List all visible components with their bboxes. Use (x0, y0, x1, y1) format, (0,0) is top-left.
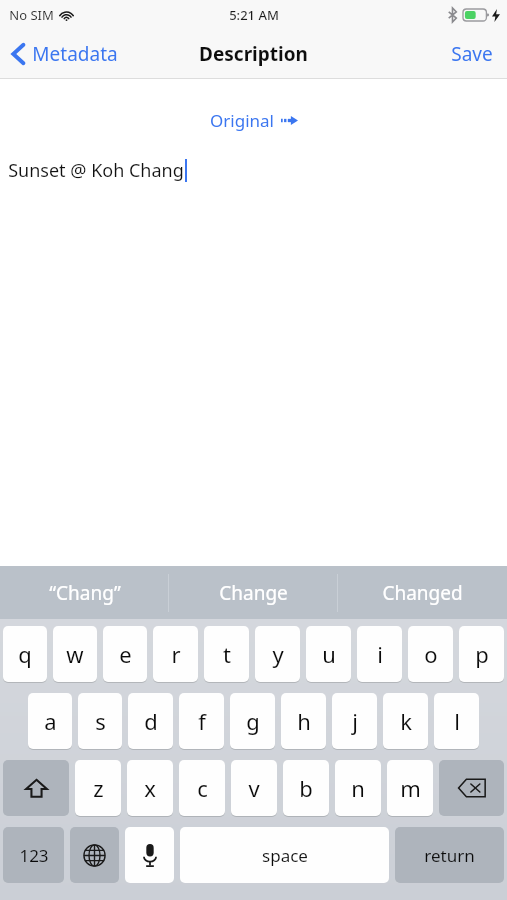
button[interactable]: c (179, 760, 225, 816)
staticText: g (246, 706, 260, 736)
staticText: l (454, 706, 460, 736)
button[interactable]: w (53, 626, 97, 682)
button[interactable]: g (230, 693, 275, 749)
button[interactable]: Backspace (439, 760, 504, 816)
staticText: a (44, 706, 57, 736)
staticText: n (351, 773, 365, 803)
button[interactable]: t (204, 626, 249, 682)
button[interactable]: Shift (3, 760, 69, 816)
button[interactable]: Original (202, 105, 306, 136)
button[interactable]: l (434, 693, 479, 749)
button[interactable]: v (231, 760, 277, 816)
staticText: o (424, 639, 438, 669)
staticText: t (223, 639, 231, 669)
button[interactable]: y (255, 626, 300, 682)
button[interactable]: z (75, 760, 121, 816)
staticText: k (400, 706, 412, 736)
staticText: p (475, 639, 489, 669)
staticText: b (299, 773, 313, 803)
button[interactable]: k (383, 693, 428, 749)
button[interactable]: m (387, 760, 433, 816)
staticText: Original (210, 109, 274, 132)
staticText: y (272, 639, 284, 669)
staticText: 5:21 AM (229, 6, 279, 24)
staticText: Description (199, 41, 308, 67)
staticText: r (171, 639, 181, 669)
staticText: Changed (382, 580, 463, 606)
staticText: q (18, 639, 32, 669)
staticText: d (144, 706, 158, 736)
button[interactable]: h (281, 693, 326, 749)
button[interactable]: Changed (338, 566, 507, 619)
button[interactable]: o (408, 626, 453, 682)
staticText: x (144, 773, 156, 803)
staticText: Sunset @ Koh Chang (8, 158, 184, 183)
staticText: c (197, 773, 208, 803)
button[interactable]: u (306, 626, 351, 682)
staticText: v (248, 773, 260, 803)
staticText: f (198, 706, 206, 736)
staticText: h (297, 706, 311, 736)
button[interactable]: b (283, 760, 329, 816)
staticText: Metadata (32, 41, 118, 67)
button[interactable]: i (357, 626, 402, 682)
button[interactable]: “Chang” (0, 566, 169, 619)
button[interactable]: Save (437, 29, 507, 78)
staticText: e (119, 639, 132, 669)
button[interactable]: r (153, 626, 198, 682)
button[interactable]: Change keyboard (70, 827, 119, 883)
button[interactable]: x (127, 760, 173, 816)
button[interactable]: d (128, 693, 173, 749)
staticText: i (377, 639, 383, 669)
staticText: return (424, 844, 475, 867)
staticText: Save (451, 41, 493, 67)
staticText: m (400, 773, 421, 803)
staticText: j (352, 706, 358, 736)
button[interactable]: Dictation (125, 827, 174, 883)
button[interactable]: a (28, 693, 72, 749)
staticText: w (66, 639, 84, 669)
button[interactable]: s (78, 693, 122, 749)
button[interactable]: Change (169, 566, 338, 619)
staticText: Change (219, 580, 288, 606)
button[interactable]: f (179, 693, 224, 749)
button[interactable]: 123 (3, 827, 64, 883)
button[interactable]: p (459, 626, 504, 682)
staticText: space (262, 844, 308, 867)
button[interactable]: space (180, 827, 389, 883)
staticText: u (322, 639, 336, 669)
staticText: z (93, 773, 104, 803)
button[interactable]: q (3, 626, 47, 682)
button[interactable]: j (332, 693, 377, 749)
staticText: s (95, 706, 106, 736)
button[interactable]: return (395, 827, 504, 883)
staticText: 123 (19, 844, 49, 867)
staticText: “Chang” (49, 580, 121, 606)
staticText: No SIM (9, 6, 54, 24)
button[interactable]: n (335, 760, 381, 816)
button[interactable]: e (103, 626, 147, 682)
button[interactable]: Metadata (0, 29, 128, 78)
